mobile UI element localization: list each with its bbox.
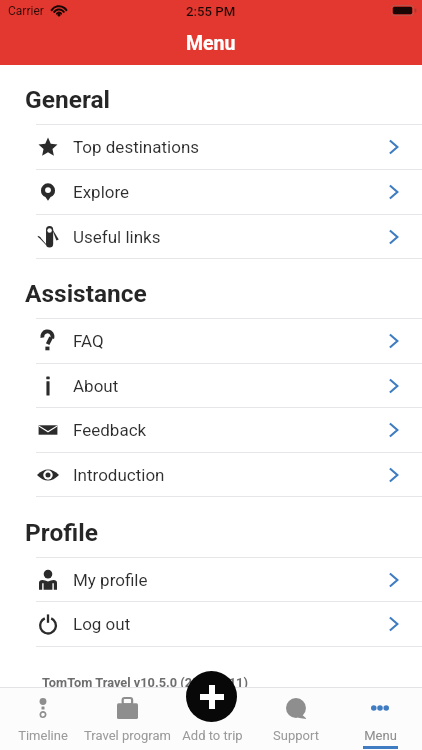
- button[interactable]: Feedback: [0, 408, 422, 452]
- staticText: Assistance: [25, 279, 147, 308]
- staticText: Menu: [186, 32, 236, 55]
- staticText: Useful links: [73, 227, 161, 247]
- staticText: Introduction: [73, 465, 165, 485]
- staticText: Timeline: [18, 728, 68, 743]
- button[interactable]: Explore: [0, 170, 422, 214]
- staticText: Log out: [73, 614, 131, 634]
- button[interactable]: Add to trip: [186, 671, 237, 722]
- staticText: Travel program: [84, 728, 171, 743]
- staticText: TomTom Travel v10.5.0 (20230411): [42, 675, 248, 690]
- button[interactable]: About: [0, 364, 422, 407]
- staticText: Support: [273, 728, 319, 743]
- button[interactable]: Timeline: [0, 688, 85, 750]
- button[interactable]: Introduction: [0, 453, 422, 496]
- staticText: Carrier: [8, 4, 44, 18]
- staticText: My profile: [73, 570, 148, 590]
- staticText: Explore: [73, 182, 130, 202]
- staticText: Profile: [25, 518, 98, 547]
- staticText: FAQ: [73, 331, 104, 351]
- staticText: Feedback: [73, 420, 147, 440]
- staticText: Add to trip: [182, 728, 243, 743]
- staticText: General: [25, 85, 111, 114]
- button[interactable]: Useful links: [0, 215, 422, 258]
- staticText: 2:55 PM: [186, 4, 236, 19]
- button[interactable]: My profile: [0, 558, 422, 601]
- button[interactable]: Menu: [338, 688, 422, 750]
- button[interactable]: Log out: [0, 602, 422, 646]
- staticText: Top destinations: [73, 137, 200, 157]
- staticText: About: [73, 376, 119, 396]
- button[interactable]: Top destinations: [0, 125, 422, 169]
- button[interactable]: Travel program: [85, 688, 170, 750]
- button[interactable]: Add to trip: [170, 688, 254, 750]
- staticText: Menu: [364, 728, 397, 743]
- button[interactable]: FAQ: [0, 319, 422, 363]
- button[interactable]: Support: [254, 688, 338, 750]
